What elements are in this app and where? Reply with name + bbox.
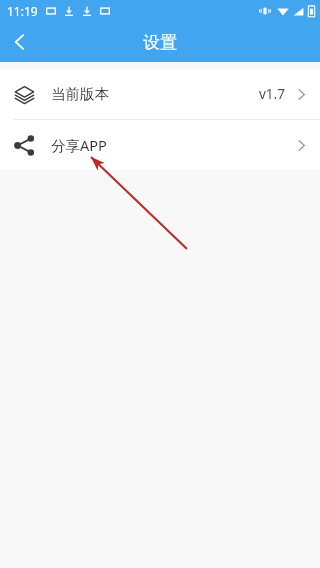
button[interactable]: 分享APP bbox=[0, 120, 320, 170]
staticText: 设置 bbox=[143, 32, 177, 53]
button[interactable]: Back bbox=[0, 22, 40, 62]
button[interactable]: 当前版本 bbox=[0, 69, 320, 119]
staticText: 分享APP bbox=[51, 135, 107, 155]
staticText: v1.7 bbox=[259, 85, 285, 103]
staticText: 当前版本 bbox=[51, 85, 109, 103]
staticText: 11:19 bbox=[7, 3, 38, 19]
